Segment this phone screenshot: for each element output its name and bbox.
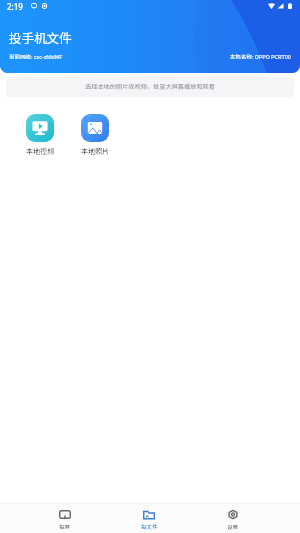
button[interactable]: 投文件 (107, 504, 191, 533)
staticText: 选择本地的照片或视频，投至大屏幕播放和观看 (85, 82, 215, 91)
staticText: 当前网络: csc-zNkiMF (9, 53, 63, 61)
staticText: 本地照片 (81, 146, 109, 156)
staticText: 2:19 (7, 1, 23, 12)
button[interactable]: 投屏 (23, 504, 107, 533)
staticText: 投屏 (59, 523, 71, 531)
staticText: 投文件 (141, 523, 158, 531)
button[interactable]: 设置 (191, 504, 275, 533)
staticText: 本地视频 (26, 146, 54, 156)
staticText: 本机名称: OPPO PCRT00 (230, 53, 291, 61)
button[interactable]: 选择本地的照片或视频，投至大屏幕播放和观看 (6, 77, 294, 97)
button[interactable]: 本地视频 (26, 114, 54, 156)
staticText: 投手机文件 (9, 28, 72, 46)
staticText: 设置 (227, 523, 239, 531)
button[interactable]: 本地照片 (81, 114, 109, 156)
